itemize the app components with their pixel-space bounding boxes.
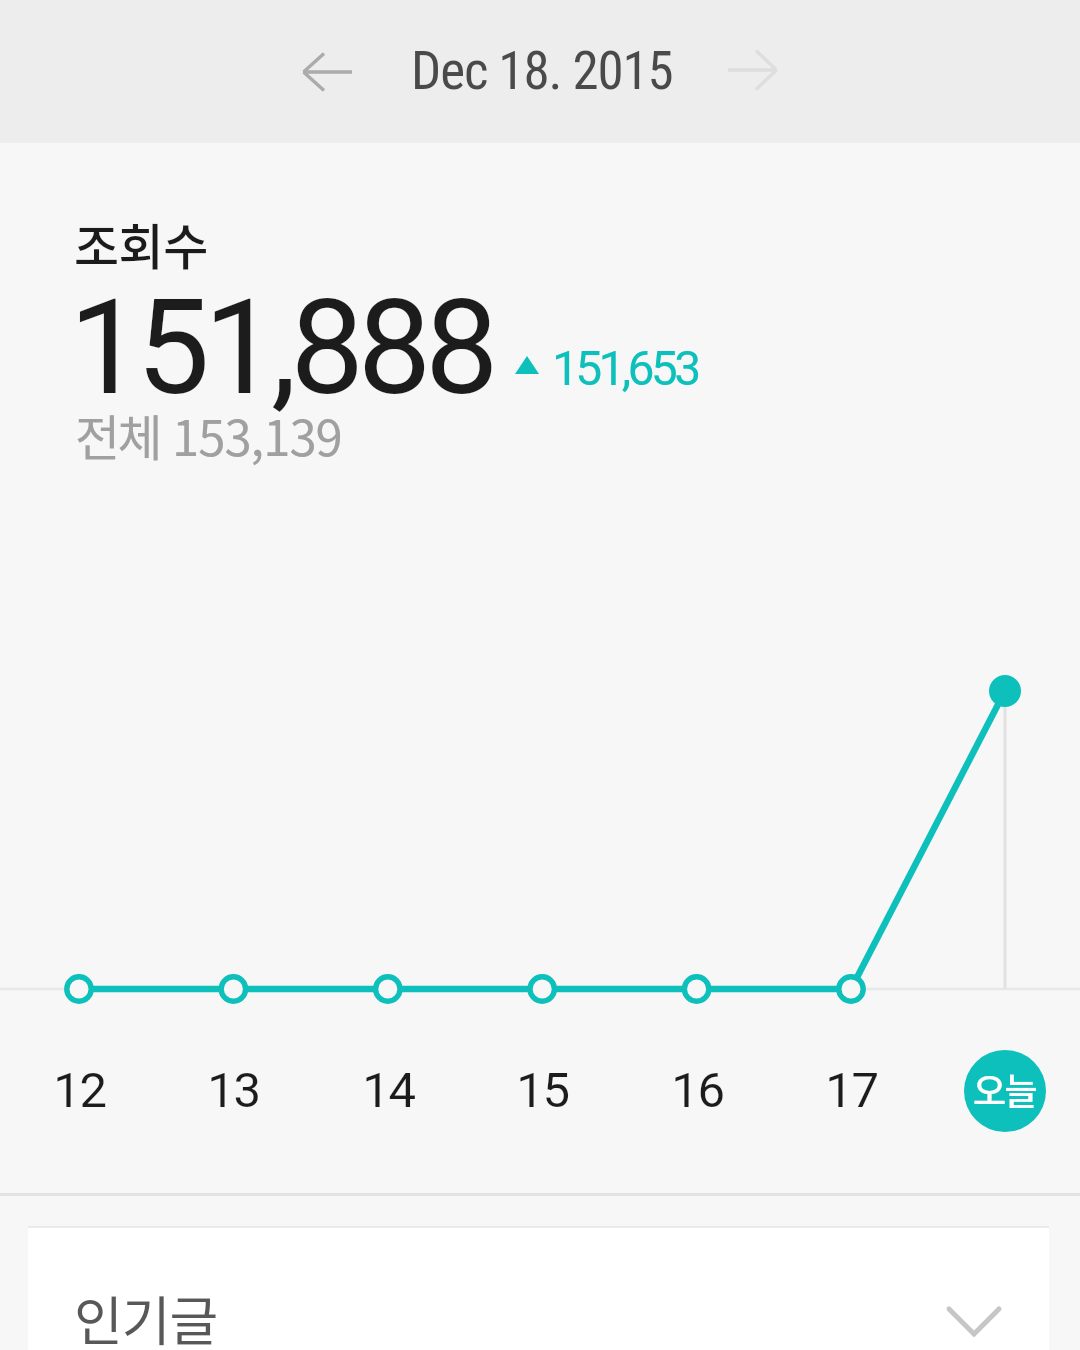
- button[interactable]: 14: [343, 1045, 433, 1135]
- staticText: 인기글: [74, 1280, 218, 1350]
- staticText: 153,139: [172, 399, 342, 470]
- button[interactable]: Expand popular posts: [924, 1283, 1024, 1350]
- staticText: 오늘: [973, 1063, 1037, 1115]
- staticText: 13: [207, 1062, 260, 1119]
- button[interactable]: 16: [652, 1045, 742, 1135]
- staticText: Dec 18. 2015: [411, 40, 673, 102]
- staticText: 15: [516, 1062, 569, 1119]
- staticText: 12: [53, 1062, 106, 1119]
- staticText: 151,653: [552, 340, 698, 396]
- button[interactable]: 17: [806, 1045, 896, 1135]
- staticText: 151,888: [69, 271, 493, 425]
- staticText: 17: [825, 1062, 878, 1119]
- staticText: 14: [362, 1062, 415, 1119]
- button[interactable]: 12: [34, 1045, 124, 1135]
- staticText: 조회수: [74, 208, 208, 279]
- staticText: 전체: [75, 399, 161, 470]
- button[interactable]: Dec 18. 2015: [390, 18, 690, 126]
- button[interactable]: 인기글: [28, 1228, 1049, 1350]
- button[interactable]: 오늘: [964, 1050, 1046, 1132]
- button[interactable]: Previous day: [277, 22, 377, 122]
- button[interactable]: 13: [188, 1045, 278, 1135]
- button[interactable]: 15: [497, 1045, 587, 1135]
- staticText: 16: [671, 1062, 724, 1119]
